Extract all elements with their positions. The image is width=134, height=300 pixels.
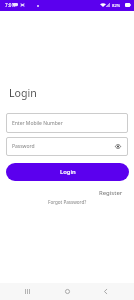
staticText: Login bbox=[9, 86, 37, 100]
staticText: 7:01 bbox=[5, 2, 15, 8]
button[interactable]: Login bbox=[6, 163, 129, 181]
button[interactable]: Home bbox=[59, 283, 76, 300]
button[interactable]: Enter Mobile Number bbox=[6, 113, 128, 133]
staticText: Forgot Password? bbox=[48, 199, 87, 205]
button[interactable]: Show password bbox=[113, 142, 122, 151]
button[interactable]: Back bbox=[97, 283, 114, 300]
staticText: Enter Mobile Number bbox=[12, 120, 63, 127]
staticText: Login bbox=[60, 168, 76, 176]
button[interactable]: Forgot Password? bbox=[48, 199, 87, 205]
staticText: Register bbox=[99, 189, 123, 197]
button[interactable]: Recents bbox=[19, 283, 36, 300]
button[interactable]: Register bbox=[99, 189, 123, 197]
staticText: 82% bbox=[112, 3, 121, 9]
button[interactable]: Password bbox=[6, 137, 128, 156]
staticText: Password bbox=[12, 143, 35, 150]
